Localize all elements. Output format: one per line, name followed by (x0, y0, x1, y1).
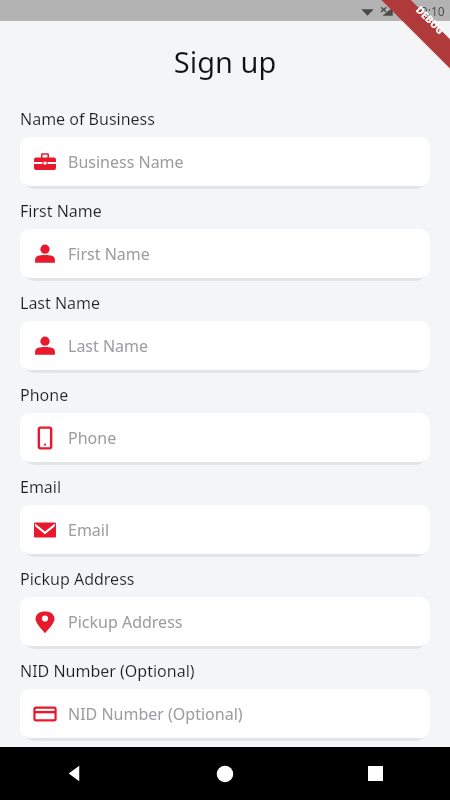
staticText: Last Name (68, 335, 149, 357)
button[interactable]: Business Name (20, 137, 430, 186)
staticText: Email (68, 519, 110, 541)
button[interactable]: Pickup Address (20, 597, 430, 646)
staticText: Phone (68, 427, 117, 449)
staticText: DEBUG (413, 3, 448, 37)
staticText: First Name (68, 243, 150, 265)
staticText: First Name (20, 200, 102, 222)
staticText: Sign up (0, 42, 450, 81)
staticText: 10:10 (414, 3, 445, 19)
staticText: Name of Business (20, 108, 155, 130)
staticText: Last Name (20, 292, 101, 314)
staticText: Email (20, 476, 62, 498)
button[interactable]: Recents (300, 747, 450, 800)
staticText: NID Number (Optional) (68, 703, 243, 725)
staticText: Pickup Address (68, 611, 183, 633)
staticText: Phone (20, 384, 69, 406)
button[interactable]: Home (150, 747, 300, 800)
staticText: NID Number (Optional) (20, 660, 195, 682)
button[interactable]: Back (0, 747, 150, 800)
button[interactable]: First Name (20, 229, 430, 278)
staticText: Business Name (68, 151, 184, 173)
button[interactable]: Phone (20, 413, 430, 462)
button[interactable]: NID Number (Optional) (20, 689, 430, 738)
staticText: Pickup Address (20, 568, 135, 590)
button[interactable]: Last Name (20, 321, 430, 370)
button[interactable]: Email (20, 505, 430, 554)
